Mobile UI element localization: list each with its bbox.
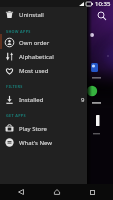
staticText: SHOW APPS (6, 29, 31, 34)
staticText: FILTERS (6, 84, 23, 89)
staticText: GET APPS (6, 113, 26, 118)
button[interactable]: What's New (0, 136, 87, 149)
button[interactable]: Back (7, 184, 35, 200)
staticText: 9 (81, 96, 85, 104)
button[interactable]: Recents (78, 184, 106, 200)
button[interactable]: Installed (0, 93, 87, 106)
staticText: What's New (19, 139, 53, 147)
button[interactable]: Own order (0, 36, 87, 49)
staticText: Installed (19, 96, 44, 104)
staticText: Alphabetical (19, 53, 54, 61)
button[interactable]: Home (43, 184, 71, 200)
button[interactable]: Alphabetical (0, 50, 87, 63)
button[interactable]: Play Store (0, 122, 87, 135)
staticText: Most used (19, 67, 49, 75)
button[interactable]: Most used (0, 64, 87, 77)
staticText: 10:35 (95, 0, 111, 8)
button[interactable]: Uninstall (0, 8, 87, 21)
staticText: Play Store (19, 125, 47, 133)
staticText: Own order (19, 39, 50, 47)
staticText: Uninstall (19, 11, 44, 19)
